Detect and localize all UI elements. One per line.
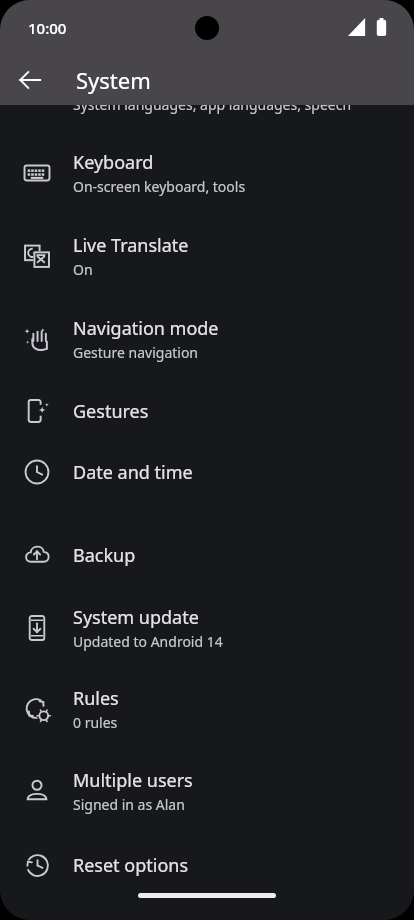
button[interactable]: Keyboard (0, 141, 414, 205)
button[interactable]: Back (10, 60, 50, 100)
staticText: System languages, app languages, speech (73, 95, 352, 114)
staticText: Keyboard (73, 150, 154, 175)
button[interactable]: Live Translate (0, 224, 414, 288)
staticText: Updated to Android 14 (73, 632, 223, 651)
staticText: Gesture navigation (73, 343, 199, 362)
staticText: Reset options (73, 853, 189, 878)
staticText: 10:00 (28, 18, 67, 38)
staticText: Rules (73, 686, 119, 711)
button[interactable]: Backup (0, 527, 414, 583)
staticText: Gestures (73, 399, 149, 424)
button[interactable]: Date and time (0, 444, 414, 500)
button[interactable]: Gestures (0, 383, 414, 439)
staticText: Multiple users (73, 768, 193, 793)
button[interactable]: Rules (0, 677, 414, 741)
staticText: On (73, 260, 93, 279)
staticText: System (76, 65, 151, 95)
staticText: System update (73, 605, 199, 630)
staticText: Date and time (73, 460, 193, 485)
staticText: Backup (73, 543, 136, 568)
staticText: 0 rules (73, 713, 118, 732)
button[interactable]: Navigation mode (0, 307, 414, 371)
staticText: On-screen keyboard, tools (73, 177, 246, 196)
button[interactable]: Reset options (0, 837, 414, 893)
button[interactable]: Multiple users (0, 759, 414, 823)
staticText: Navigation mode (73, 316, 219, 341)
button[interactable]: System update (0, 596, 414, 660)
staticText: Live Translate (73, 233, 189, 258)
staticText: Signed in as Alan (73, 795, 185, 814)
